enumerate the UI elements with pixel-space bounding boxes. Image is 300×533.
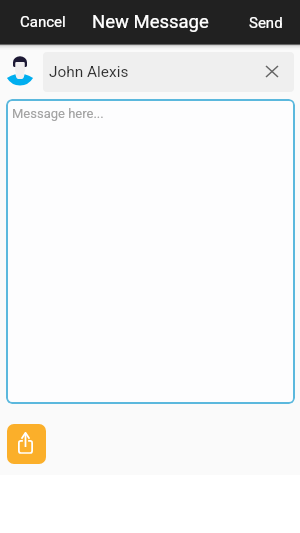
button[interactable]: Remove John Alexis [254, 52, 294, 92]
button[interactable]: John Alexis [43, 52, 294, 92]
button[interactable]: Send [238, 1, 293, 44]
staticText: Message here... [12, 106, 104, 121]
staticText: Send [249, 14, 283, 32]
button[interactable]: Attach file [7, 424, 46, 464]
button[interactable]: Cancel [8, 0, 77, 43]
button[interactable]: Message here... [6, 99, 295, 404]
staticText: Cancel [20, 13, 66, 31]
staticText: New Message [92, 11, 209, 33]
staticText: John Alexis [49, 63, 254, 81]
